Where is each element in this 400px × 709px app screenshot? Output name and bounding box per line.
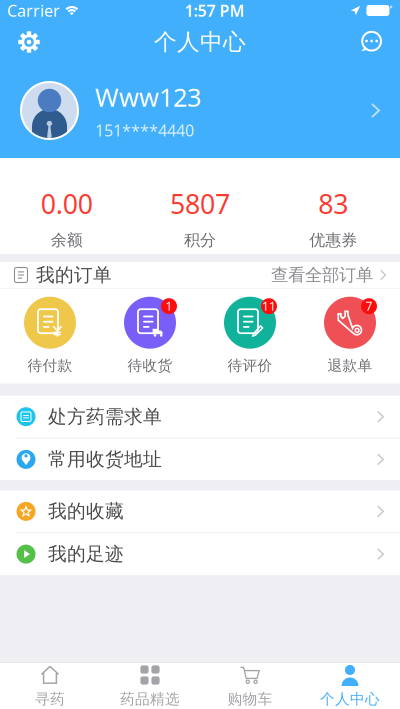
button[interactable]: 0.00 [0, 158, 133, 254]
button[interactable]: 我的收藏 [0, 490, 400, 532]
staticText: 优惠券 [309, 230, 357, 250]
staticText: Www123 [95, 80, 201, 114]
staticText: 查看全部订单 [271, 264, 373, 286]
staticText: 83 [318, 186, 348, 221]
button[interactable]: 7 [300, 289, 400, 384]
staticText: 余额 [51, 230, 83, 250]
staticText: 药品精选 [120, 690, 180, 708]
staticText: 待付款 [27, 357, 72, 375]
staticText: 积分 [184, 230, 216, 250]
staticText: 我的收藏 [48, 500, 124, 523]
button[interactable]: 设置 [7, 21, 51, 63]
button[interactable]: 消息 [349, 21, 393, 63]
staticText: 我的足迹 [48, 543, 124, 565]
button[interactable]: 11 [200, 289, 300, 384]
staticText: 1:57 PM [184, 0, 244, 21]
staticText: 待评价 [227, 357, 272, 375]
staticText: 退款单 [327, 357, 372, 375]
button[interactable]: 我的足迹 [0, 533, 400, 575]
button[interactable]: 寻药 [0, 663, 100, 709]
button[interactable]: 1 [100, 289, 200, 384]
button[interactable]: 购物车 [200, 663, 300, 709]
staticText: 0.00 [41, 186, 93, 221]
staticText: 寻药 [35, 690, 65, 708]
button[interactable]: 药品精选 [100, 663, 200, 709]
button[interactable]: 常用收货地址 [0, 438, 400, 480]
staticText: 个人中心 [154, 28, 246, 56]
button[interactable]: 待付款 [0, 289, 100, 384]
staticText: 个人中心 [320, 690, 380, 708]
staticText: 处方药需求单 [48, 405, 162, 428]
staticText: 7 [365, 298, 372, 314]
staticText: 常用收货地址 [48, 448, 162, 471]
button[interactable]: Www123 [0, 63, 400, 158]
staticText: 5807 [170, 186, 230, 221]
button[interactable]: 查看全部订单 [271, 257, 386, 293]
staticText: 151****4440 [95, 120, 194, 141]
staticText: 1 [165, 298, 172, 314]
button[interactable]: 5807 [133, 158, 267, 254]
staticText: 11 [262, 298, 276, 314]
staticText: 我的订单 [36, 263, 112, 286]
staticText: 待收货 [127, 357, 172, 375]
button[interactable]: 83 [267, 158, 400, 254]
staticText: 购物车 [227, 690, 272, 708]
button[interactable]: 个人中心 [300, 663, 400, 709]
button[interactable]: 处方药需求单 [0, 396, 400, 438]
staticText: Carrier [7, 0, 60, 21]
